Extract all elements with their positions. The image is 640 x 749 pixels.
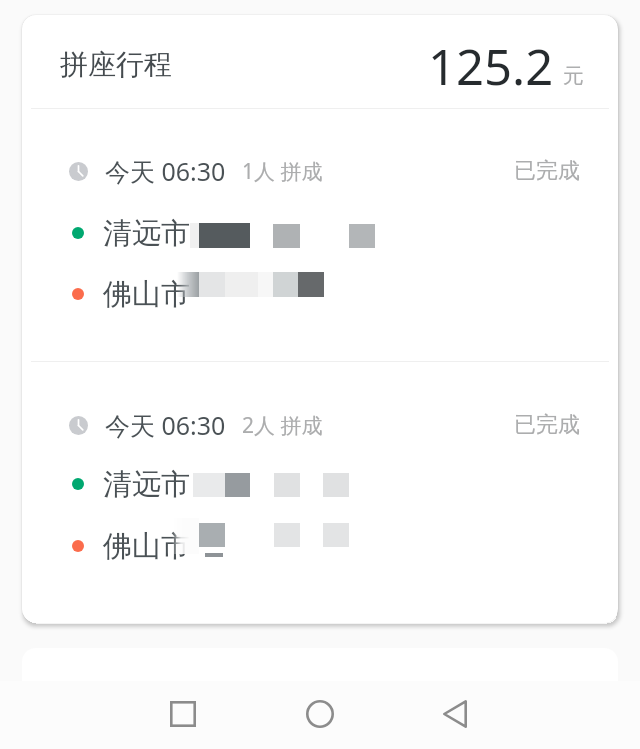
staticText: 2人 拼成 (242, 411, 323, 440)
button[interactable] (22, 648, 618, 708)
staticText: 清远市 (103, 215, 190, 252)
staticText: 佛山市 (103, 528, 190, 565)
button[interactable]: 今天 06:30 (22, 403, 618, 447)
staticText: 已完成 (514, 157, 580, 185)
staticText: 元 (563, 63, 584, 89)
staticText: 1人 拼成 (242, 157, 323, 186)
staticText: 125.2 (428, 33, 554, 100)
staticText: 拼座行程 (60, 47, 172, 82)
staticText: 已完成 (514, 411, 580, 439)
button[interactable]: Back (427, 686, 483, 742)
button[interactable]: 拼座行程 (22, 15, 618, 108)
staticText: 清远市 (103, 466, 190, 503)
button[interactable]: 今天 06:30 (22, 149, 618, 193)
staticText: 佛山市 (103, 276, 190, 313)
button[interactable]: Home (292, 686, 348, 742)
staticText: 今天 06:30 (105, 408, 226, 442)
button[interactable]: Recent apps (155, 686, 211, 742)
staticText: 今天 06:30 (105, 154, 226, 188)
button[interactable]: 拼座行程 (22, 15, 618, 623)
